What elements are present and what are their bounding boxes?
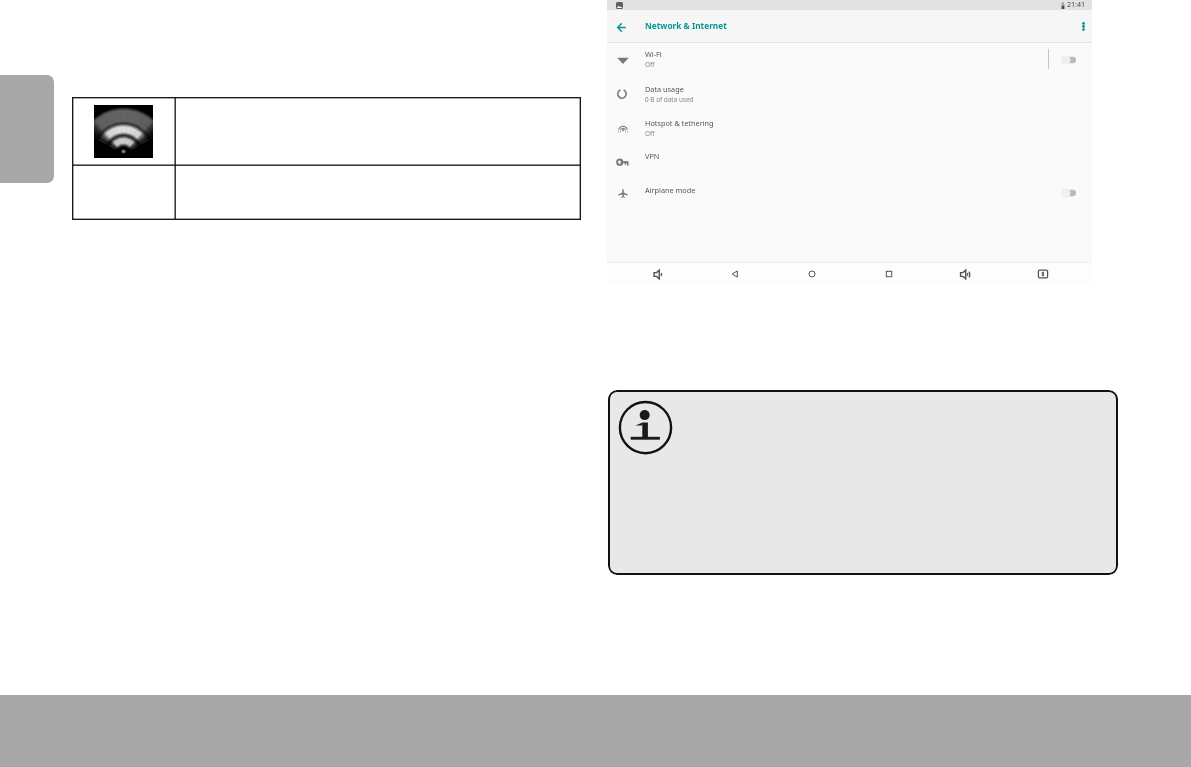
staticText: 21:41 — [1067, 0, 1085, 10]
staticText: Wi-Fi — [645, 49, 662, 59]
staticText: Airplane mode — [645, 185, 696, 195]
staticText: VPN — [645, 151, 660, 161]
staticText: Hotspot & tethering — [645, 118, 714, 128]
button[interactable]: Wi-Fi switch — [1059, 53, 1085, 67]
button[interactable]: Wi-Fi — [607, 48, 1092, 81]
staticText: 0 B of data used — [645, 95, 694, 104]
staticText: Data usage — [645, 84, 684, 94]
button[interactable]: Recents — [870, 263, 908, 285]
button[interactable]: Back — [608, 14, 634, 40]
staticText: Off — [645, 129, 655, 138]
button[interactable]: Hotspot & tethering — [607, 117, 1092, 150]
button[interactable]: Volume down — [639, 263, 677, 285]
button[interactable]: More options — [1073, 13, 1093, 40]
button[interactable]: Data usage — [607, 83, 1092, 116]
button[interactable]: Volume up — [946, 263, 984, 285]
button[interactable]: Screenshot — [1024, 263, 1062, 285]
button[interactable]: Home — [793, 263, 831, 285]
button[interactable]: Airplane mode switch — [1059, 186, 1085, 200]
button[interactable]: Back — [716, 263, 754, 285]
staticText: Network & Internet — [645, 20, 727, 31]
button[interactable]: Airplane mode — [607, 179, 1092, 212]
button[interactable]: VPN — [607, 145, 1092, 178]
staticText: Off — [645, 60, 655, 69]
